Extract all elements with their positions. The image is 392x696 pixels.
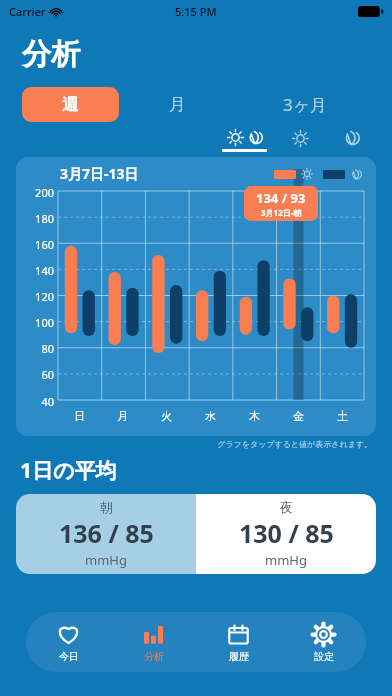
staticText: 週 bbox=[62, 94, 79, 115]
staticText: 金 bbox=[293, 409, 304, 423]
staticText: 60 bbox=[18, 367, 54, 382]
staticText: 分析 bbox=[144, 650, 164, 663]
staticText: 160 bbox=[18, 237, 54, 252]
staticText: 夜 bbox=[280, 499, 293, 515]
staticText: 履歴 bbox=[229, 650, 249, 663]
button[interactable]: 朝 bbox=[16, 494, 196, 574]
staticText: 120 bbox=[18, 289, 54, 304]
button[interactable]: 3ヶ月 bbox=[235, 87, 376, 122]
staticText: 火 bbox=[161, 409, 172, 423]
staticText: グラフをタップすると値が表示されます。 bbox=[0, 439, 372, 449]
other: Morning bbox=[292, 130, 309, 147]
staticText: 80 bbox=[18, 341, 54, 356]
button[interactable]: 月 bbox=[119, 87, 235, 122]
staticText: 朝 bbox=[100, 499, 113, 515]
staticText: 分析 bbox=[22, 36, 80, 73]
button[interactable]: Morning bbox=[286, 129, 315, 148]
staticText: mmHg bbox=[265, 551, 307, 569]
staticText: 136 / 85 bbox=[59, 516, 154, 550]
staticText: 3月12日-朝 bbox=[261, 207, 302, 218]
staticText: 設定 bbox=[314, 650, 334, 663]
staticText: 130 / 85 bbox=[239, 516, 334, 550]
staticText: 木 bbox=[249, 409, 260, 423]
staticText: 1日の平均 bbox=[20, 456, 117, 485]
other: Morning and night bbox=[227, 129, 244, 146]
staticText: 200 bbox=[18, 185, 54, 200]
button[interactable]: 設定 bbox=[281, 612, 366, 672]
staticText: 今日 bbox=[59, 650, 79, 663]
staticText: 140 bbox=[18, 263, 54, 278]
staticText: Carrier bbox=[9, 4, 46, 19]
staticText: 土 bbox=[337, 409, 348, 423]
button[interactable]: 3月7日-13日 bbox=[16, 157, 376, 436]
staticText: 月 bbox=[169, 94, 186, 115]
button[interactable]: Morning and night bbox=[219, 129, 270, 152]
button[interactable]: 分析 bbox=[111, 612, 196, 672]
staticText: 水 bbox=[205, 409, 216, 423]
button[interactable]: 今日 bbox=[26, 612, 111, 672]
button[interactable]: 夜 bbox=[196, 494, 376, 574]
staticText: 月 bbox=[117, 409, 128, 423]
button[interactable]: 履歴 bbox=[196, 612, 281, 672]
staticText: 5:15 PM bbox=[175, 4, 217, 19]
staticText: mmHg bbox=[85, 551, 127, 569]
staticText: 日 bbox=[74, 409, 85, 423]
staticText: 40 bbox=[18, 394, 54, 409]
other: Night bbox=[344, 130, 360, 146]
staticText: 100 bbox=[18, 315, 54, 330]
staticText: 134 / 93 bbox=[256, 189, 306, 207]
button[interactable]: Night bbox=[338, 129, 366, 147]
button[interactable]: 週 bbox=[22, 87, 119, 122]
staticText: 3ヶ月 bbox=[283, 93, 328, 116]
staticText: 3月7日-13日 bbox=[60, 164, 139, 183]
staticText: 180 bbox=[18, 211, 54, 226]
